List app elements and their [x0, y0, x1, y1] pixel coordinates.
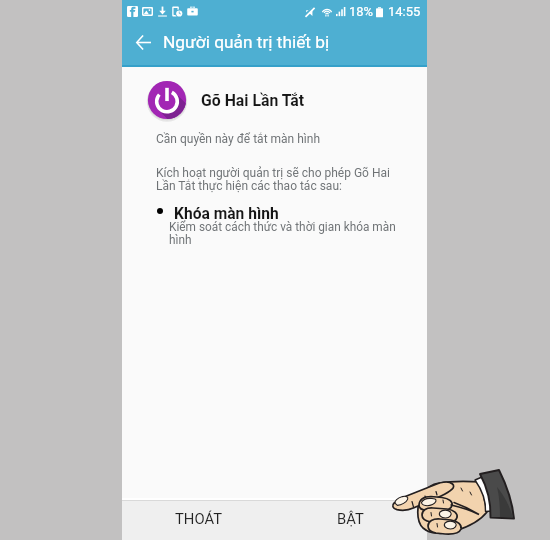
staticText: BẬT	[337, 510, 364, 527]
staticText: Cần quyền này để tắt màn hình	[156, 132, 321, 146]
staticText: Kích hoạt người quản trị sẽ cho phép Gõ …	[156, 166, 390, 193]
staticText: THOÁT	[175, 510, 222, 527]
staticText: Gõ Hai Lần Tắt	[201, 91, 305, 110]
staticText: 14:55	[388, 4, 421, 19]
staticText: Khóa màn hình	[174, 205, 279, 223]
staticText: Kiểm soát cách thức và thời gian khóa mà…	[169, 220, 396, 247]
button[interactable]: THOÁT	[122, 501, 274, 540]
button[interactable]: BẬT	[274, 501, 427, 540]
staticText: Người quản trị thiết bị	[163, 32, 330, 52]
staticText: 18%	[349, 4, 374, 19]
button[interactable]: Back	[126, 28, 160, 62]
